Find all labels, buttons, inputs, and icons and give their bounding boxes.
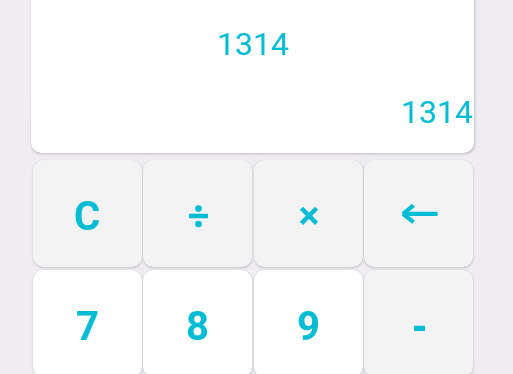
staticText: 7 <box>76 303 99 350</box>
button[interactable]: 9 <box>254 270 363 374</box>
button[interactable]: C <box>33 160 142 267</box>
button[interactable]: 7 <box>33 270 142 374</box>
staticText: 1314 <box>217 25 289 63</box>
button[interactable]: Multiply <box>254 160 363 267</box>
staticText: 8 <box>186 303 209 350</box>
button[interactable]: Backspace <box>364 160 473 267</box>
staticText: C <box>74 193 101 240</box>
staticText: 9 <box>297 303 320 350</box>
button[interactable]: Minus <box>364 270 473 374</box>
staticText: 1314 <box>401 93 473 131</box>
button[interactable]: 8 <box>143 270 252 374</box>
button[interactable]: 1314 <box>31 0 474 153</box>
button[interactable]: Divide <box>143 160 252 267</box>
